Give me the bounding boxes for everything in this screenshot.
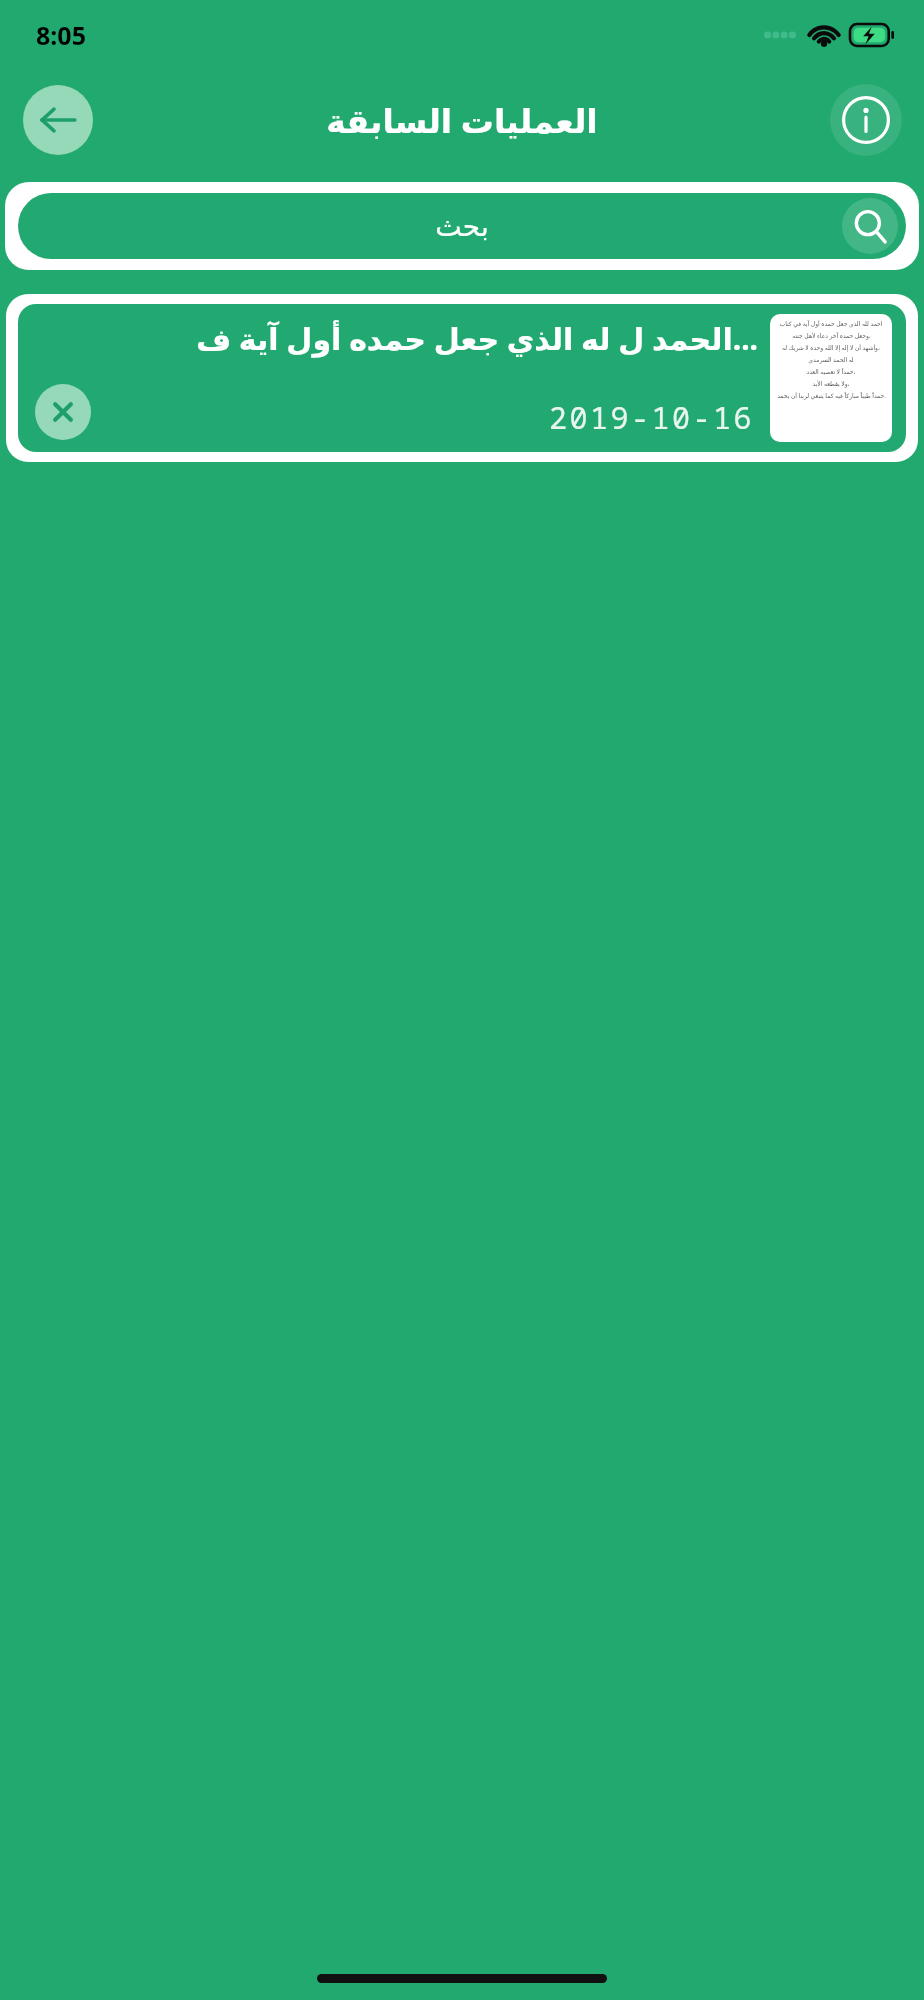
button[interactable]: Info — [830, 84, 902, 156]
staticText: وجعل حمده آخر دعاء لأهل جنته، — [792, 332, 871, 340]
staticText: 2019-10-16 — [549, 397, 754, 438]
staticText: العمليات السابقة — [326, 98, 598, 143]
staticText: بحث — [435, 210, 489, 243]
staticText: له الحمد السرمدي — [808, 356, 854, 364]
staticText: الحمد ل له الذي جعل حمده أول آية ف... — [161, 318, 758, 359]
staticText: احمد لله الذي جعل حمده أول آية في كتاب ر… — [774, 320, 888, 328]
staticText: ولا يقطعه الأبد، — [812, 380, 850, 388]
staticText: وأشهد أن لا إله إلا الله وحده لا شريك له… — [782, 344, 880, 352]
button[interactable]: بحث — [18, 193, 906, 259]
button[interactable]: احمد لله الذي جعل حمده أول آية في كتاب ر… — [18, 304, 906, 452]
staticText: حمداً طيباً مباركاً فيه كما ينبغي لربنا … — [777, 392, 886, 400]
button[interactable]: Delete — [35, 384, 91, 440]
button[interactable]: Back — [23, 85, 93, 155]
staticText: حمداً لا تعصيه العدد، — [806, 368, 856, 376]
button[interactable]: Search — [842, 198, 898, 254]
staticText: 8:05 — [36, 18, 86, 52]
